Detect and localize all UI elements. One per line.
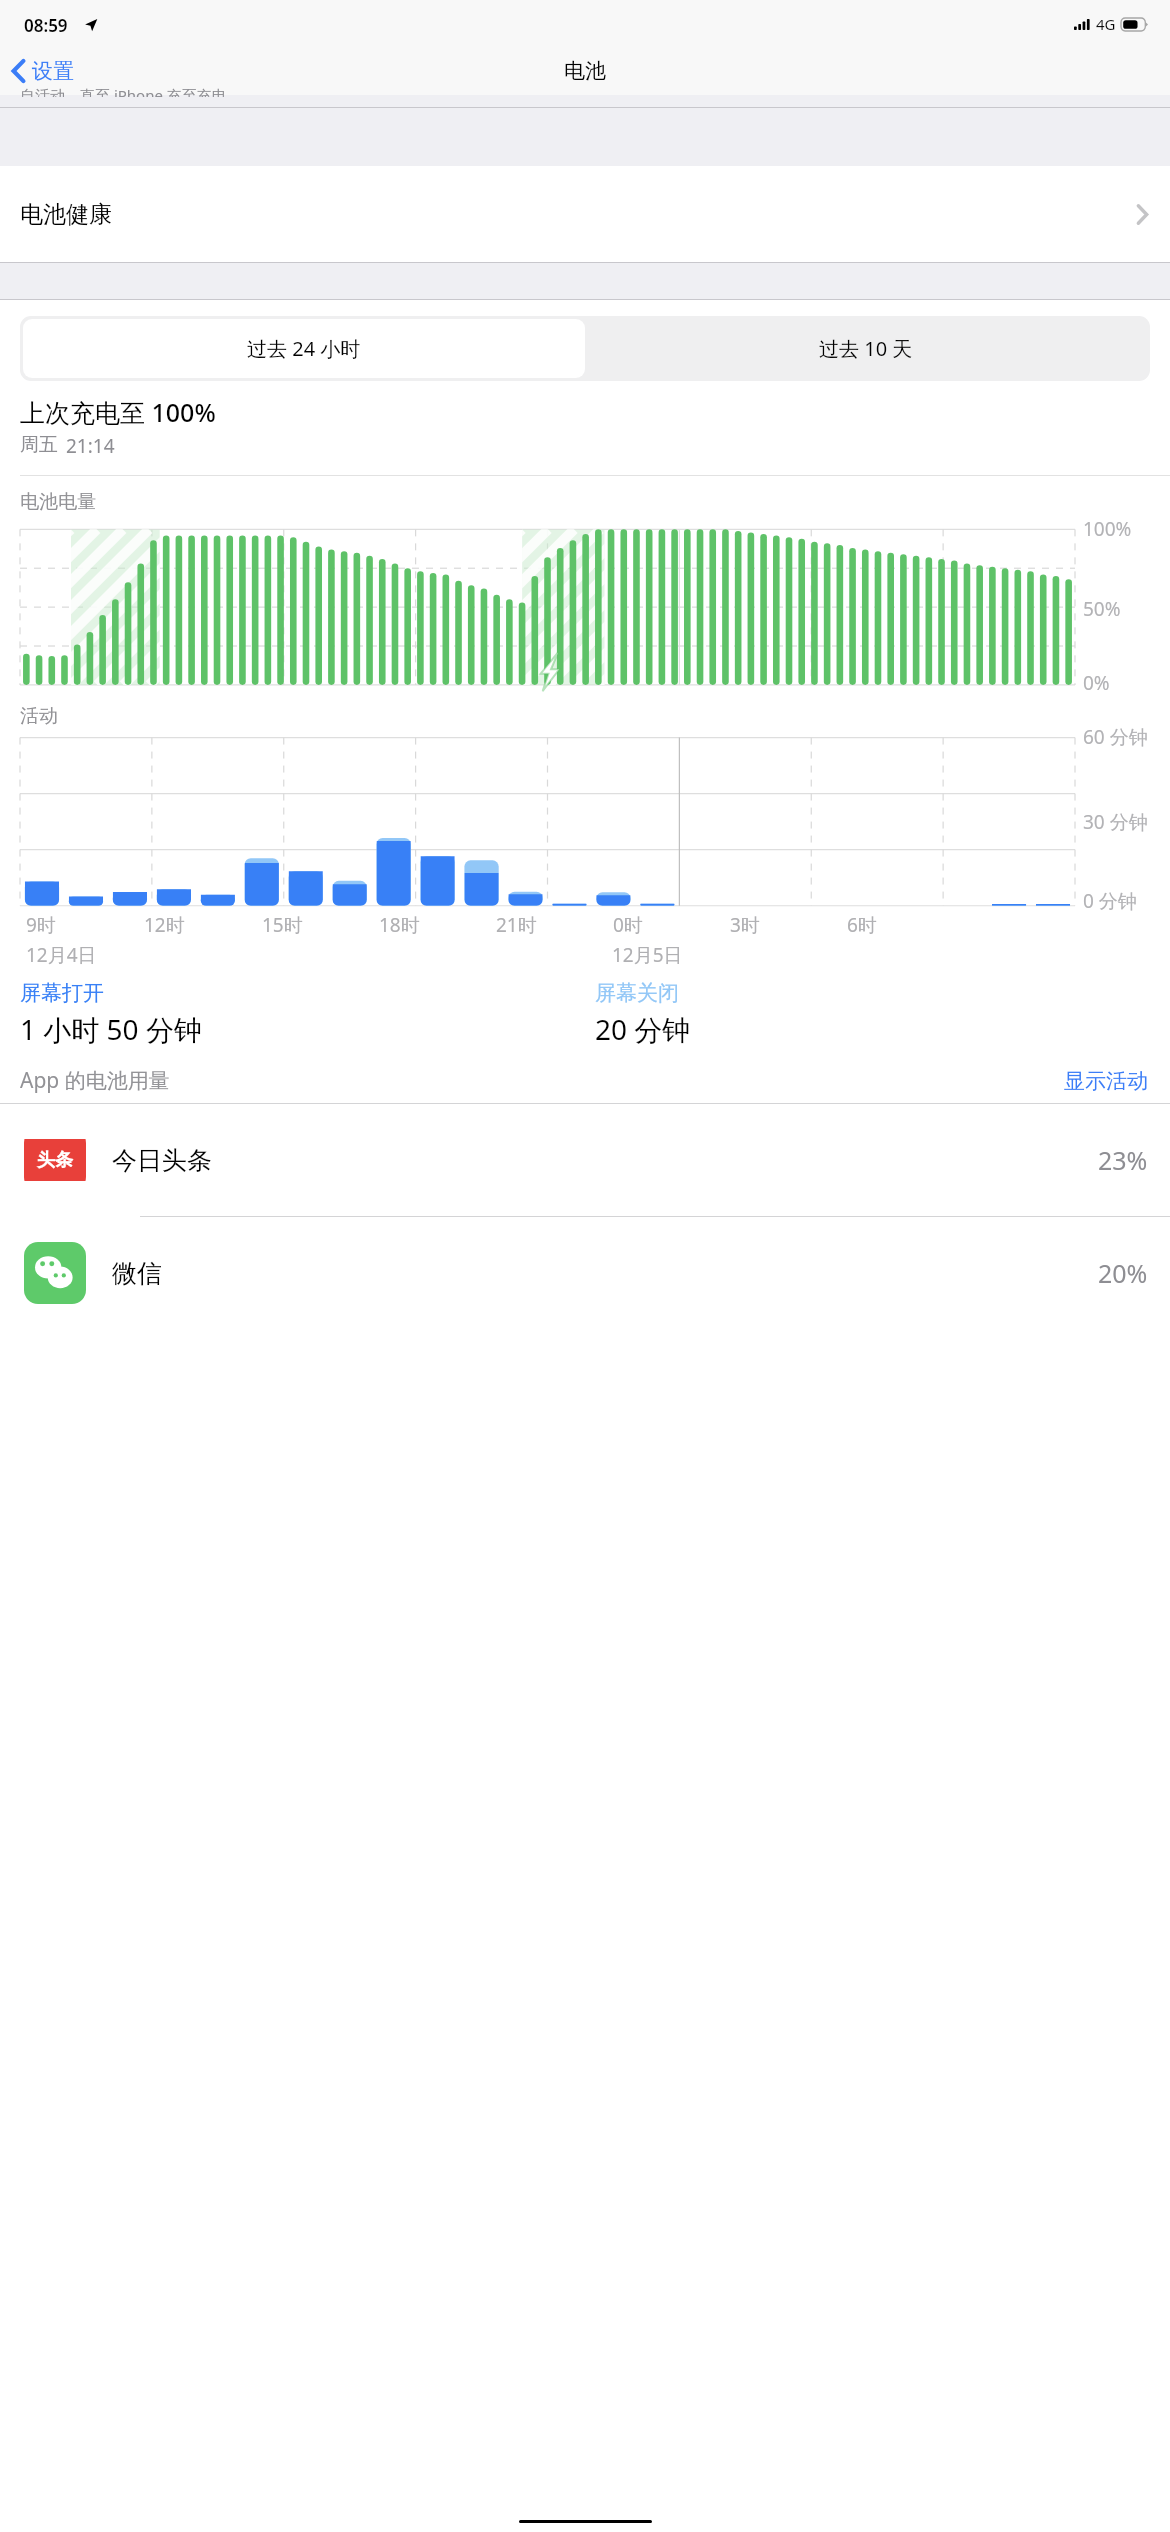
staticText: 12月5日: [612, 942, 683, 968]
staticText: 12时: [144, 912, 185, 938]
staticText: 20 分钟: [595, 1010, 691, 1048]
staticText: 头条: [37, 1149, 73, 1172]
button[interactable]: 显示活动: [1064, 1068, 1148, 1094]
button[interactable]: 设置: [0, 54, 84, 88]
staticText: 自活动，直至 iPhone 充至充电。: [20, 85, 242, 97]
staticText: 6时: [847, 912, 877, 938]
staticText: 30 分钟: [1083, 809, 1148, 835]
staticText: 过去 24 小时: [247, 335, 361, 362]
staticText: 周五: [20, 433, 58, 457]
staticText: 电池健康: [20, 200, 112, 229]
staticText: 电池电量: [20, 490, 96, 514]
staticText: 屏幕关闭: [595, 980, 679, 1006]
staticText: 20%: [1098, 1256, 1148, 1290]
staticText: 18时: [379, 912, 420, 938]
staticText: 12月4日: [26, 942, 97, 968]
button[interactable]: 过去 10 天: [585, 319, 1147, 378]
button[interactable]: 过去 24 小时: [23, 319, 585, 378]
button[interactable]: 电池健康: [0, 166, 1170, 262]
staticText: 1 小时 50 分钟: [20, 1010, 202, 1048]
staticText: 0 分钟: [1083, 888, 1137, 914]
staticText: 15时: [262, 912, 303, 938]
button[interactable]: 微信: [0, 1217, 1170, 1329]
staticText: App 的电池用量: [20, 1066, 170, 1095]
staticText: 微信: [112, 1258, 162, 1289]
staticText: 0时: [613, 912, 643, 938]
staticText: 3时: [730, 912, 760, 938]
staticText: 今日头条: [112, 1145, 212, 1176]
staticText: 设置: [32, 58, 74, 84]
staticText: 显示活动: [1064, 1068, 1148, 1094]
button[interactable]: 头条: [0, 1104, 1170, 1216]
staticText: 21:14: [66, 433, 115, 459]
staticText: 50%: [1083, 596, 1121, 622]
staticText: 9时: [26, 912, 56, 938]
staticText: 过去 10 天: [819, 335, 913, 362]
staticText: 100%: [1083, 516, 1132, 542]
staticText: 21时: [496, 912, 537, 938]
staticText: 上次充电至 100%: [20, 395, 216, 429]
staticText: 活动: [20, 704, 58, 728]
staticText: 0%: [1083, 670, 1110, 696]
staticText: 4G: [1096, 14, 1116, 34]
staticText: 电池: [564, 58, 606, 84]
staticText: 屏幕打开: [20, 980, 104, 1006]
staticText: 23%: [1098, 1143, 1148, 1177]
staticText: 60 分钟: [1083, 724, 1148, 750]
staticText: 08:59: [24, 14, 68, 37]
